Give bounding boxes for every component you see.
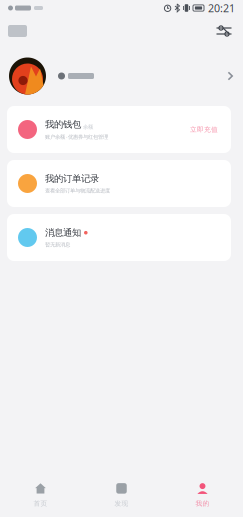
button[interactable]: 首页 — [0, 480, 81, 510]
button[interactable]: 我的钱包 — [7, 106, 231, 153]
button[interactable]: 消息通知 — [7, 214, 231, 261]
staticText: 发现 — [114, 499, 128, 508]
staticText: 账户余额 · 优惠券与红包管理 — [45, 133, 108, 140]
button[interactable] — [0, 46, 243, 106]
button[interactable]: Filter — [213, 20, 235, 42]
button[interactable]: 我的订单记录 — [7, 160, 231, 207]
button[interactable]: 我的 — [162, 480, 243, 510]
staticText: 我的 — [195, 499, 209, 508]
staticText: 暂无新消息 — [45, 241, 70, 248]
staticText: 立即充值 — [190, 125, 218, 134]
staticText: 消息通知 — [45, 227, 81, 238]
staticText: 我的订单记录 — [45, 173, 99, 184]
staticText: 20:21 — [208, 1, 235, 15]
staticText: 首页 — [33, 499, 47, 508]
button[interactable]: 发现 — [81, 480, 162, 510]
staticText: 我的钱包 — [45, 119, 81, 130]
staticText: 查看全部订单与物流配送进度 — [45, 187, 110, 194]
staticText: 余额 — [83, 124, 93, 130]
